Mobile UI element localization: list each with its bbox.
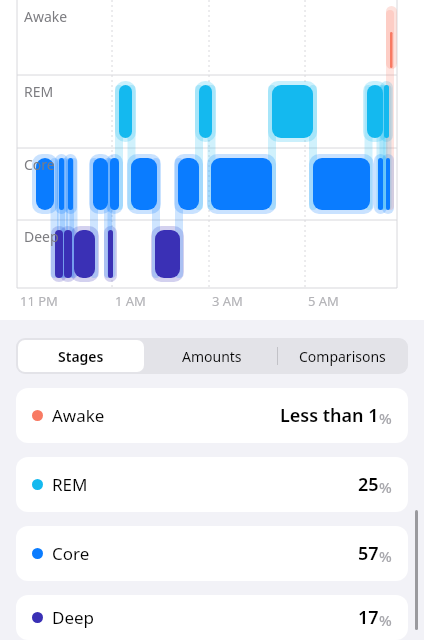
button[interactable]: Core — [16, 526, 408, 581]
staticText: Comparisons — [299, 347, 386, 366]
staticText: Deep — [52, 606, 95, 629]
staticText: 5 AM — [308, 292, 339, 310]
staticText: % — [379, 477, 392, 497]
staticText: Awake — [52, 404, 105, 427]
staticText: % — [379, 408, 392, 428]
staticText: 1 AM — [115, 292, 146, 310]
staticText: Less than 1 — [280, 403, 379, 428]
staticText: REM — [24, 82, 54, 101]
staticText: Stages — [58, 347, 104, 366]
staticText: Awake — [24, 7, 68, 26]
staticText: Amounts — [182, 347, 242, 366]
staticText: Deep — [24, 227, 59, 246]
staticText: 25 — [358, 472, 379, 497]
staticText: Core — [24, 155, 55, 174]
button[interactable]: Comparisons — [277, 338, 408, 374]
staticText: 17 — [358, 605, 379, 630]
button[interactable]: Awake — [16, 388, 408, 443]
button[interactable]: Stages — [18, 340, 144, 372]
staticText: 3 AM — [212, 292, 243, 310]
staticText: % — [379, 610, 392, 630]
button[interactable]: Amounts — [146, 338, 277, 374]
staticText: % — [379, 546, 392, 566]
staticText: REM — [52, 473, 88, 496]
staticText: 11 PM — [20, 292, 58, 310]
button[interactable]: Deep — [16, 595, 408, 640]
button[interactable]: REM — [16, 457, 408, 512]
staticText: 57 — [358, 541, 379, 566]
staticText: Core — [52, 542, 90, 565]
